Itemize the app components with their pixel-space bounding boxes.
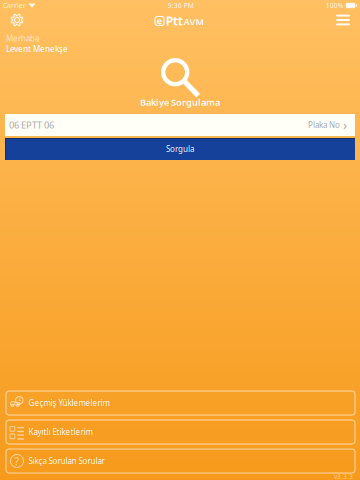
button[interactable]: Settings — [0, 10, 34, 30]
button[interactable]: Sorgula — [5, 138, 355, 160]
staticText: AVM — [183, 15, 204, 28]
button[interactable]: 06 EPTT 06 — [5, 114, 355, 136]
staticText: v3.3.3 — [334, 472, 353, 480]
button[interactable]: ? — [6, 449, 355, 473]
staticText: Bakiye Sorgulama — [140, 96, 220, 108]
staticText: Merhaba — [6, 33, 39, 44]
staticText: 100% — [326, 1, 344, 10]
staticText: 9:36 PM — [168, 1, 194, 10]
button[interactable]: Geçmiş Yüklemelerim — [6, 391, 355, 415]
staticText: Ptt — [166, 13, 183, 29]
staticText: Sıkça Sorulan Sorular — [28, 456, 104, 466]
staticText: Kayıtlı Etiketlerim — [28, 427, 92, 437]
staticText: Geçmiş Yüklemelerim — [28, 398, 109, 408]
staticText: ? — [14, 454, 19, 468]
staticText: Plaka No — [308, 120, 340, 130]
button[interactable]: Menu — [326, 10, 360, 30]
staticText: 06 EPTT 06 — [9, 119, 54, 131]
staticText: Sorgula — [166, 144, 194, 154]
staticText: Carrier — [3, 1, 26, 10]
button[interactable]: Kayıtlı Etiketlerim — [6, 420, 355, 444]
staticText: Levent Menekşe — [6, 44, 68, 54]
staticText: › — [343, 116, 347, 133]
staticText: e — [156, 14, 162, 27]
